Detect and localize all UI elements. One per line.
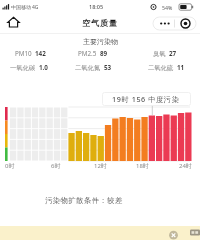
staticText: 6时 (51, 162, 61, 170)
staticText: PM2.5 (78, 49, 97, 58)
staticText: 一氧化碳 (10, 64, 36, 72)
staticText: 臭氧 (153, 50, 166, 58)
staticText: 12时 (94, 162, 107, 170)
staticText: 中国移动 (11, 4, 31, 10)
staticText: 1.0 (39, 63, 48, 72)
staticText: PM10 (15, 49, 32, 58)
staticText: 89 (100, 49, 108, 58)
staticText: 54% (162, 4, 173, 11)
staticText: 24时 (179, 162, 192, 170)
staticText: 18:05 (89, 3, 104, 10)
button[interactable]: PM2.5 (53, 49, 133, 58)
staticText: 污染物扩散条件：较差 (45, 196, 123, 205)
button[interactable] (153, 17, 196, 30)
button[interactable]: PM10 (0, 49, 70, 58)
button[interactable] (0, 225, 164, 240)
staticText: 142 (35, 49, 46, 58)
staticText: 空气质量 (82, 18, 118, 28)
staticText: 0时 (5, 162, 15, 170)
staticText: 19时 156 中度污染 (112, 94, 180, 104)
staticText: 27 (169, 49, 177, 58)
button[interactable]: 臭氧 (125, 49, 200, 58)
button[interactable]: 二氧化硫 (126, 63, 200, 72)
staticText: 主要污染物 (83, 37, 118, 46)
button[interactable]: 一氧化碳 (0, 63, 69, 72)
staticText: 4G (32, 4, 39, 11)
button[interactable]: 二氧化氮 (53, 63, 133, 72)
staticText: 二氧化氮 (75, 64, 101, 72)
staticText: 11 (177, 63, 185, 72)
staticText: 二氧化硫 (148, 64, 174, 72)
button[interactable] (5, 14, 23, 31)
button[interactable] (166, 227, 178, 239)
staticText: 18时 (136, 162, 149, 170)
staticText: 53 (104, 63, 112, 72)
